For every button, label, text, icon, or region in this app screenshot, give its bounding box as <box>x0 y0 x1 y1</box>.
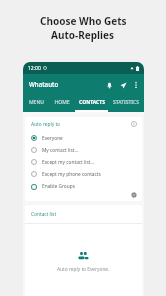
staticText: MENU <box>29 99 44 106</box>
button[interactable]: HOME <box>49 92 75 112</box>
staticText: CONTACTS <box>79 99 105 106</box>
staticText: Contact list <box>31 211 57 218</box>
staticText: Auto reply to <box>31 121 61 128</box>
staticText: Enable Groups <box>42 183 75 190</box>
staticText: Whatauto <box>29 80 59 88</box>
button[interactable]: Info <box>129 119 138 128</box>
button[interactable]: Everyone <box>31 132 142 144</box>
button[interactable]: Notifications <box>104 74 115 92</box>
staticText: Choose Who Gets <box>40 14 127 28</box>
button[interactable]: STATISTICS <box>108 92 144 112</box>
staticText: 12:00 <box>28 65 41 72</box>
button[interactable]: Send <box>115 74 131 92</box>
staticText: Auto reply to Everyone. <box>57 266 110 273</box>
staticText: STATISTICS <box>113 99 139 106</box>
staticText: Except my phone contacts <box>42 171 101 178</box>
button[interactable]: MENU <box>23 92 49 112</box>
staticText: My contact list... <box>42 147 79 154</box>
staticText: Auto-Replies <box>51 28 115 42</box>
staticText: HOME <box>54 99 70 106</box>
button[interactable]: Except my phone contacts <box>31 168 142 180</box>
button[interactable]: CONTACTS <box>75 92 108 112</box>
button[interactable]: More options <box>131 74 140 92</box>
staticText: Everyone <box>42 135 63 142</box>
button[interactable]: Settings <box>129 190 138 199</box>
button[interactable]: Except my contact list... <box>31 156 142 168</box>
button[interactable]: My contact list... <box>31 144 142 156</box>
staticText: Except my contact list... <box>42 159 95 166</box>
button[interactable]: Enable Groups <box>31 181 142 192</box>
